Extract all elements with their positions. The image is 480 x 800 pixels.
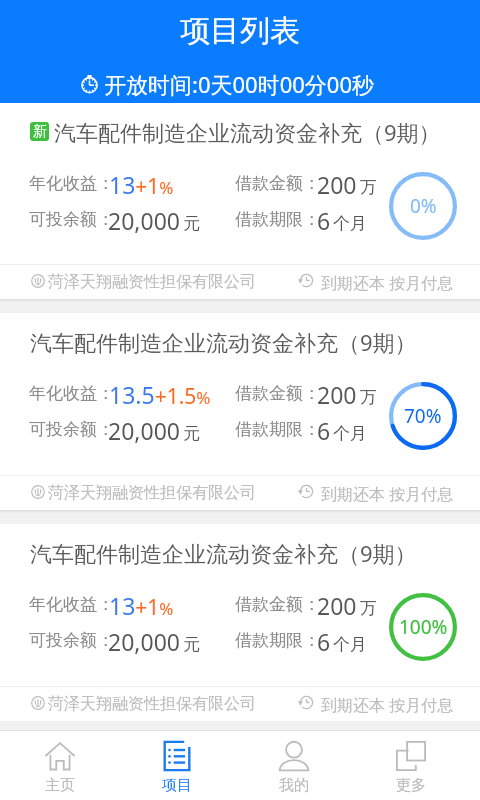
button[interactable]: 更多 xyxy=(366,731,456,800)
staticText: 6 xyxy=(317,205,331,236)
staticText: 元 xyxy=(183,634,200,655)
staticText: 个月 xyxy=(333,634,367,655)
staticText: 汽车配件制造企业流动资金补充（9期） xyxy=(30,538,417,568)
staticText: 13.5+1.5% xyxy=(109,379,211,410)
staticText: 更多 xyxy=(366,776,456,795)
staticText: 新 xyxy=(33,123,47,141)
staticText: 0% xyxy=(410,193,437,219)
staticText: 汽车配件制造企业流动资金补充（9期） xyxy=(54,117,441,147)
staticText: 13+1% xyxy=(109,590,174,621)
staticText: 可投余额： xyxy=(29,419,114,440)
button[interactable]: 我的 xyxy=(249,731,339,800)
staticText: 我的 xyxy=(249,776,339,795)
staticText: 200 xyxy=(317,169,357,200)
staticText: 菏泽天翔融资性担保有限公司 xyxy=(48,483,256,503)
staticText: 借款期限： xyxy=(235,630,320,651)
staticText: 项目 xyxy=(132,776,222,795)
staticText: 菏泽天翔融资性担保有限公司 xyxy=(48,694,256,714)
staticText: 万 xyxy=(360,387,377,408)
staticText: 菏泽天翔融资性担保有限公司 xyxy=(48,272,256,292)
staticText: 年化收益： xyxy=(29,383,114,404)
button[interactable]: 项目 xyxy=(132,731,222,800)
staticText: 汽车配件制造企业流动资金补充（9期） xyxy=(30,327,417,357)
button[interactable]: 新 xyxy=(0,103,480,299)
staticText: 到期还本 按月付息 xyxy=(321,272,454,294)
staticText: 20,000 xyxy=(108,415,180,446)
button[interactable]: 主页 xyxy=(15,731,105,800)
staticText: 100% xyxy=(399,614,448,640)
staticText: 元 xyxy=(183,213,200,234)
staticText: 70% xyxy=(404,403,442,429)
staticText: 个月 xyxy=(333,423,367,444)
staticText: 主页 xyxy=(15,776,105,795)
staticText: 6 xyxy=(317,626,331,657)
staticText: 200 xyxy=(317,590,357,621)
staticText: 开放时间:0天00时00分00秒 xyxy=(104,69,374,99)
staticText: 元 xyxy=(183,423,200,444)
button[interactable]: 汽车配件制造企业流动资金补充（9期） xyxy=(0,524,480,721)
staticText: 万 xyxy=(360,598,377,619)
staticText: 借款金额： xyxy=(235,173,320,194)
staticText: 借款期限： xyxy=(235,419,320,440)
staticText: 20,000 xyxy=(108,626,180,657)
staticText: 到期还本 按月付息 xyxy=(321,694,454,716)
staticText: 年化收益： xyxy=(29,173,114,194)
staticText: 年化收益： xyxy=(29,594,114,615)
other: Countdown timer xyxy=(79,73,100,94)
staticText: 6 xyxy=(317,415,331,446)
staticText: 借款期限： xyxy=(235,209,320,230)
staticText: 可投余额： xyxy=(29,630,114,651)
staticText: 可投余额： xyxy=(29,209,114,230)
staticText: 借款金额： xyxy=(235,594,320,615)
button[interactable]: 汽车配件制造企业流动资金补充（9期） xyxy=(0,313,480,510)
staticText: 个月 xyxy=(333,213,367,234)
staticText: 20,000 xyxy=(108,205,180,236)
staticText: 万 xyxy=(360,177,377,198)
staticText: 到期还本 按月付息 xyxy=(321,483,454,505)
staticText: 借款金额： xyxy=(235,383,320,404)
staticText: 13+1% xyxy=(109,169,174,200)
staticText: 200 xyxy=(317,379,357,410)
staticText: 项目列表 xyxy=(180,12,300,50)
